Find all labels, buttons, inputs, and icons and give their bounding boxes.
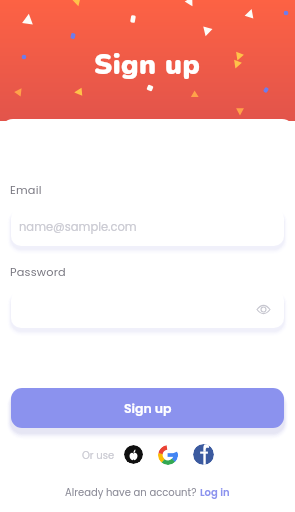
staticText: Password [10, 264, 66, 280]
button[interactable]: Sign up [11, 388, 284, 428]
button[interactable]: name@sample.com [11, 208, 284, 246]
button[interactable]: Log in [200, 485, 230, 499]
staticText: Sign up [124, 400, 172, 417]
staticText: Email [10, 182, 42, 198]
staticText: name@sample.com [19, 219, 137, 235]
button[interactable]: Sign up with Google [158, 445, 178, 465]
staticText: Or use [82, 448, 115, 462]
button[interactable]: Show password [253, 299, 273, 319]
button[interactable]: Sign up with Facebook [193, 444, 214, 465]
button[interactable]: Sign up with Apple [124, 445, 143, 464]
staticText: Already have an account? [65, 485, 200, 499]
button[interactable]: Show password [11, 290, 284, 328]
staticText: Sign up [94, 46, 201, 84]
